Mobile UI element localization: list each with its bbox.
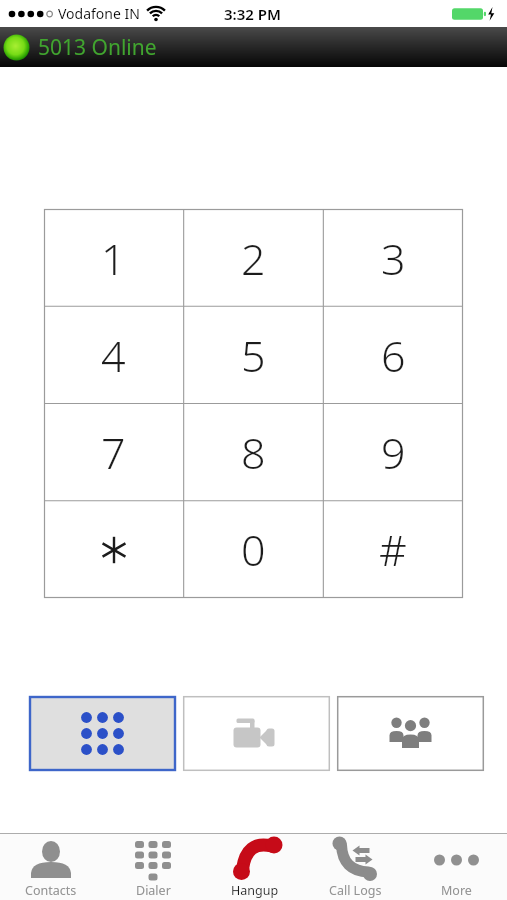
staticText: 4 <box>101 326 126 385</box>
button[interactable]: 0 <box>183 501 323 598</box>
button[interactable] <box>337 696 484 771</box>
staticText: Dialer <box>136 882 171 899</box>
button[interactable]: 1 <box>44 209 183 307</box>
staticText: 7 <box>101 423 126 482</box>
staticText: Contacts <box>25 882 77 899</box>
staticText: 5013 Online <box>38 33 157 62</box>
staticText: Hangup <box>231 882 279 899</box>
button[interactable]: Dialer <box>102 833 204 900</box>
button[interactable]: 8 <box>183 404 323 501</box>
button[interactable]: 9 <box>323 404 463 501</box>
staticText: 1 <box>101 229 126 288</box>
staticText: 9 <box>381 423 406 482</box>
staticText: 3 <box>381 229 406 288</box>
button[interactable]: 7 <box>44 404 183 501</box>
button[interactable] <box>44 501 183 598</box>
button[interactable]: # <box>323 501 463 598</box>
staticText: 6 <box>381 326 406 385</box>
button[interactable]: 2 <box>183 209 323 307</box>
staticText: 2 <box>241 229 266 288</box>
button[interactable]: Call Logs <box>305 833 406 900</box>
button[interactable]: 3 <box>323 209 463 307</box>
button[interactable] <box>29 696 176 771</box>
button[interactable]: Contacts <box>0 833 102 900</box>
staticText: # <box>379 520 407 579</box>
staticText: Call Logs <box>329 882 382 899</box>
button[interactable]: 4 <box>44 307 183 404</box>
staticText: Vodafone IN <box>58 4 140 23</box>
button[interactable]: Hangup <box>204 833 305 900</box>
staticText: 5 <box>241 326 266 385</box>
button[interactable]: 6 <box>323 307 463 404</box>
button[interactable]: More <box>406 833 507 900</box>
button[interactable] <box>183 696 330 771</box>
staticText: 8 <box>241 423 266 482</box>
staticText: 3:32 PM <box>224 4 281 24</box>
staticText: More <box>441 882 472 899</box>
staticText: 0 <box>241 520 266 579</box>
button[interactable]: 5 <box>183 307 323 404</box>
